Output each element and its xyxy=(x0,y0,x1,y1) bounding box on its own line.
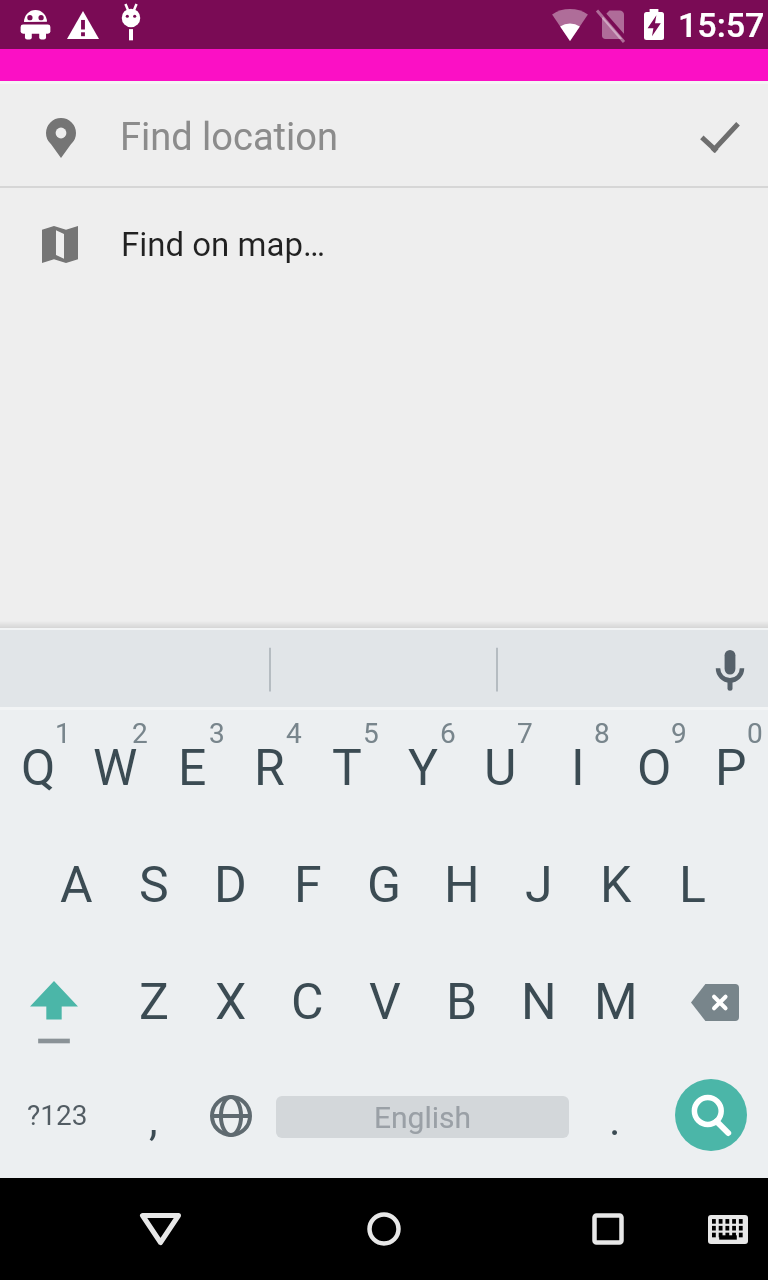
staticText: B xyxy=(446,973,478,1032)
button[interactable]: , xyxy=(115,1061,192,1178)
button[interactable]: N xyxy=(500,944,577,1061)
button[interactable] xyxy=(362,1207,406,1251)
staticText: English xyxy=(374,1100,472,1135)
button[interactable]: G xyxy=(346,827,423,944)
button[interactable]: Z xyxy=(115,944,192,1061)
staticText: , xyxy=(149,1094,158,1146)
button[interactable]: P xyxy=(693,710,768,827)
button[interactable]: O xyxy=(616,710,693,827)
button[interactable]: T xyxy=(308,710,385,827)
staticText: O xyxy=(637,739,672,798)
button[interactable] xyxy=(0,944,115,1061)
button[interactable]: R xyxy=(231,710,308,827)
button[interactable]: C xyxy=(269,944,346,1061)
button[interactable]: V xyxy=(346,944,423,1061)
staticText: 8 xyxy=(594,717,610,750)
staticText: 1 xyxy=(55,717,71,750)
staticText: Q xyxy=(21,739,56,798)
staticText: A xyxy=(60,856,93,915)
staticText: . xyxy=(609,1094,621,1146)
button[interactable] xyxy=(705,1206,751,1252)
button[interactable]: J xyxy=(500,827,577,944)
button[interactable]: F xyxy=(269,827,346,944)
button[interactable]: Y xyxy=(385,710,462,827)
button[interactable]: A xyxy=(38,827,115,944)
button[interactable] xyxy=(192,1061,269,1178)
staticText: T xyxy=(332,739,362,798)
button[interactable]: E xyxy=(154,710,231,827)
button[interactable]: Find on map… xyxy=(0,188,768,300)
staticText: 7 xyxy=(517,717,533,750)
staticText: Z xyxy=(139,973,169,1032)
staticText: W xyxy=(93,739,138,798)
staticText: D xyxy=(214,856,247,915)
staticText: S xyxy=(139,856,169,915)
staticText: Find location xyxy=(120,115,338,160)
staticText: K xyxy=(600,856,632,915)
staticText: 0 xyxy=(747,717,763,750)
staticText: ?123 xyxy=(27,1099,88,1132)
button[interactable]: M xyxy=(577,944,654,1061)
staticText: 15:57 xyxy=(678,5,765,45)
staticText: M xyxy=(594,973,638,1032)
staticText: H xyxy=(444,856,480,915)
staticText: F xyxy=(294,856,322,915)
button[interactable]: K xyxy=(577,827,654,944)
staticText: P xyxy=(715,739,747,798)
button[interactable] xyxy=(654,944,768,1061)
button[interactable]: L xyxy=(654,827,731,944)
button[interactable]: D xyxy=(192,827,269,944)
button[interactable] xyxy=(708,647,752,691)
button[interactable]: S xyxy=(115,827,192,944)
staticText: R xyxy=(254,739,285,798)
staticText: Find on map… xyxy=(121,225,326,264)
staticText: 3 xyxy=(209,717,225,750)
staticText: 9 xyxy=(671,717,687,750)
staticText: E xyxy=(178,739,207,798)
staticText: U xyxy=(484,739,517,798)
button[interactable]: Q xyxy=(0,710,77,827)
button[interactable]: . xyxy=(576,1061,653,1178)
button[interactable] xyxy=(653,1061,768,1178)
button[interactable]: B xyxy=(423,944,500,1061)
button[interactable] xyxy=(138,1207,182,1251)
staticText: G xyxy=(367,856,402,915)
button[interactable]: H xyxy=(423,827,500,944)
button[interactable]: I xyxy=(539,710,616,827)
staticText: 4 xyxy=(286,717,302,750)
staticText: C xyxy=(291,973,324,1032)
button[interactable]: English xyxy=(269,1061,576,1178)
staticText: V xyxy=(369,973,401,1032)
staticText: 2 xyxy=(132,717,148,750)
button[interactable]: ?123 xyxy=(0,1061,115,1178)
button[interactable]: U xyxy=(462,710,539,827)
staticText: 5 xyxy=(363,717,379,750)
staticText: I xyxy=(571,739,585,798)
button[interactable]: X xyxy=(192,944,269,1061)
button[interactable]: W xyxy=(77,710,154,827)
staticText: N xyxy=(521,973,557,1032)
staticText: Y xyxy=(408,739,439,798)
staticText: L xyxy=(679,856,706,915)
button[interactable] xyxy=(586,1207,630,1251)
staticText: J xyxy=(525,856,553,915)
staticText: X xyxy=(215,973,247,1032)
button[interactable]: Find location xyxy=(0,89,768,186)
staticText: 6 xyxy=(440,717,456,750)
